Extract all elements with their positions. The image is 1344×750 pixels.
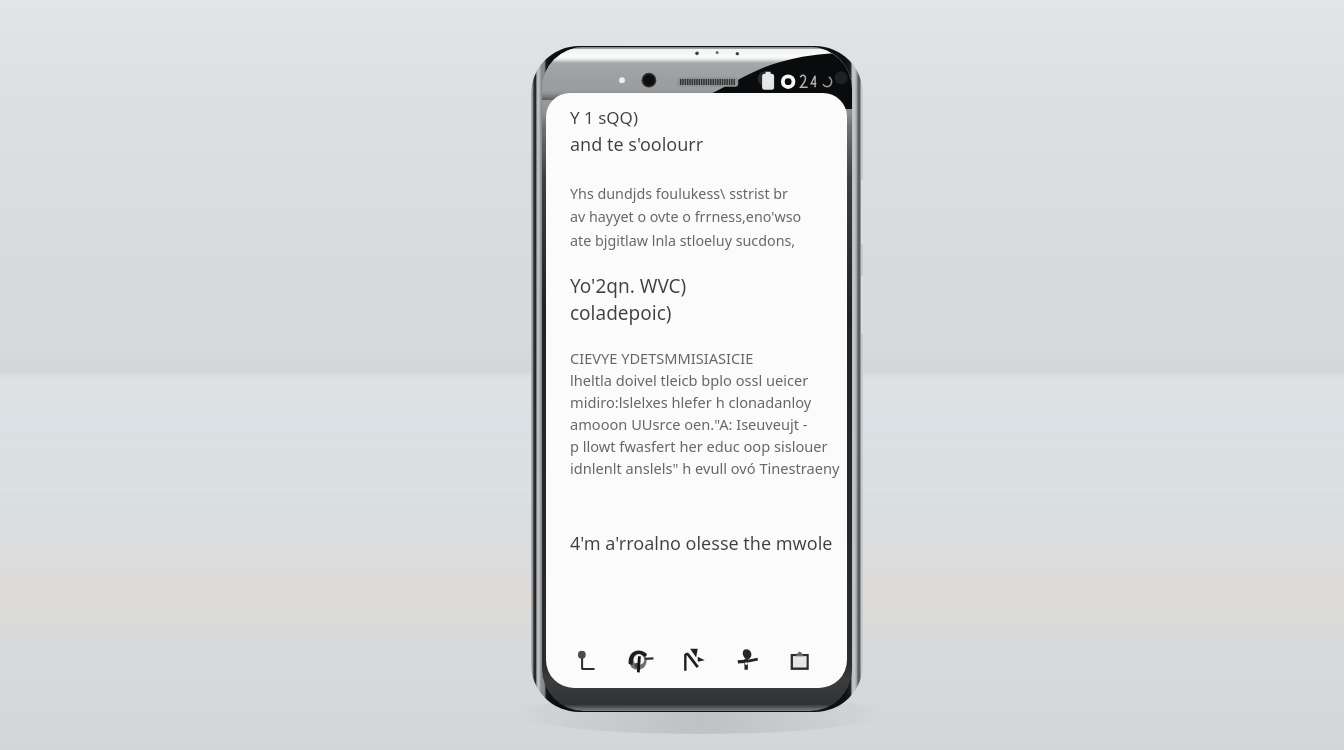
staticText: Yhs dundjds foulukess\ sstrist br av hay… <box>570 184 802 251</box>
staticText: and te s'oolourr <box>570 132 704 157</box>
staticText: Y 1 sQQ) <box>570 106 638 129</box>
staticText: 4'm a'rroalno olesse the mwole <box>570 531 833 556</box>
button[interactable]: Bookmarks <box>783 642 817 676</box>
button[interactable]: Profile <box>730 642 764 676</box>
staticText: Yo'2qn. WVC) coladepoic) <box>570 273 687 326</box>
button[interactable]: Notifications <box>677 642 711 676</box>
button[interactable]: Search <box>623 642 657 676</box>
button[interactable]: Home <box>570 642 604 676</box>
staticText: CIEVYE YDETSMMISIASICIE lheltla doivel t… <box>570 348 840 478</box>
